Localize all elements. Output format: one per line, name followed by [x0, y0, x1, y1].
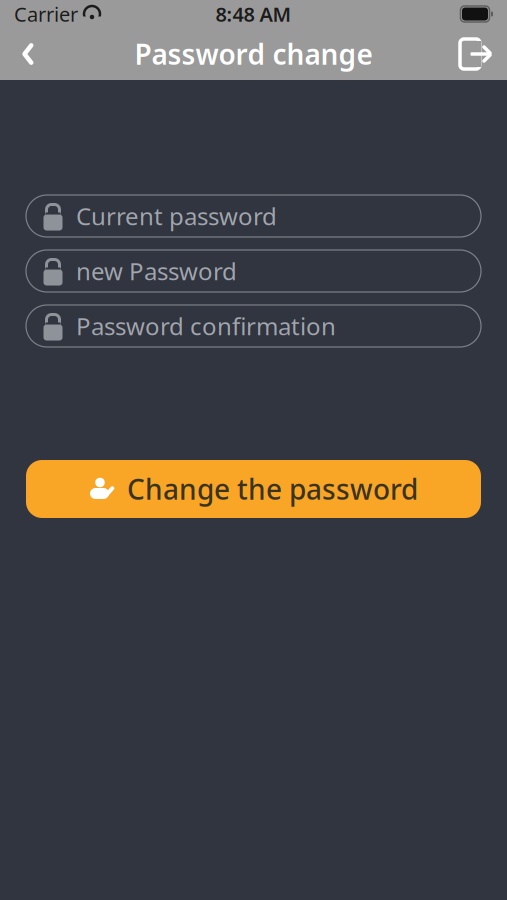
staticText: new Password [76, 255, 237, 287]
staticText: Carrier [14, 1, 78, 27]
button[interactable]: new Password [26, 250, 481, 292]
button[interactable]: Back [0, 28, 56, 80]
button[interactable]: Password confirmation [26, 305, 481, 347]
staticText: 8:48 AM [215, 1, 291, 27]
button[interactable]: Current password [26, 195, 481, 237]
staticText: Password change [134, 35, 372, 73]
staticText: Password confirmation [76, 310, 336, 342]
staticText: Current password [76, 200, 277, 232]
button[interactable]: Log out [445, 28, 507, 80]
button[interactable]: Change the password [26, 460, 481, 518]
staticText: Change the password [127, 470, 418, 508]
